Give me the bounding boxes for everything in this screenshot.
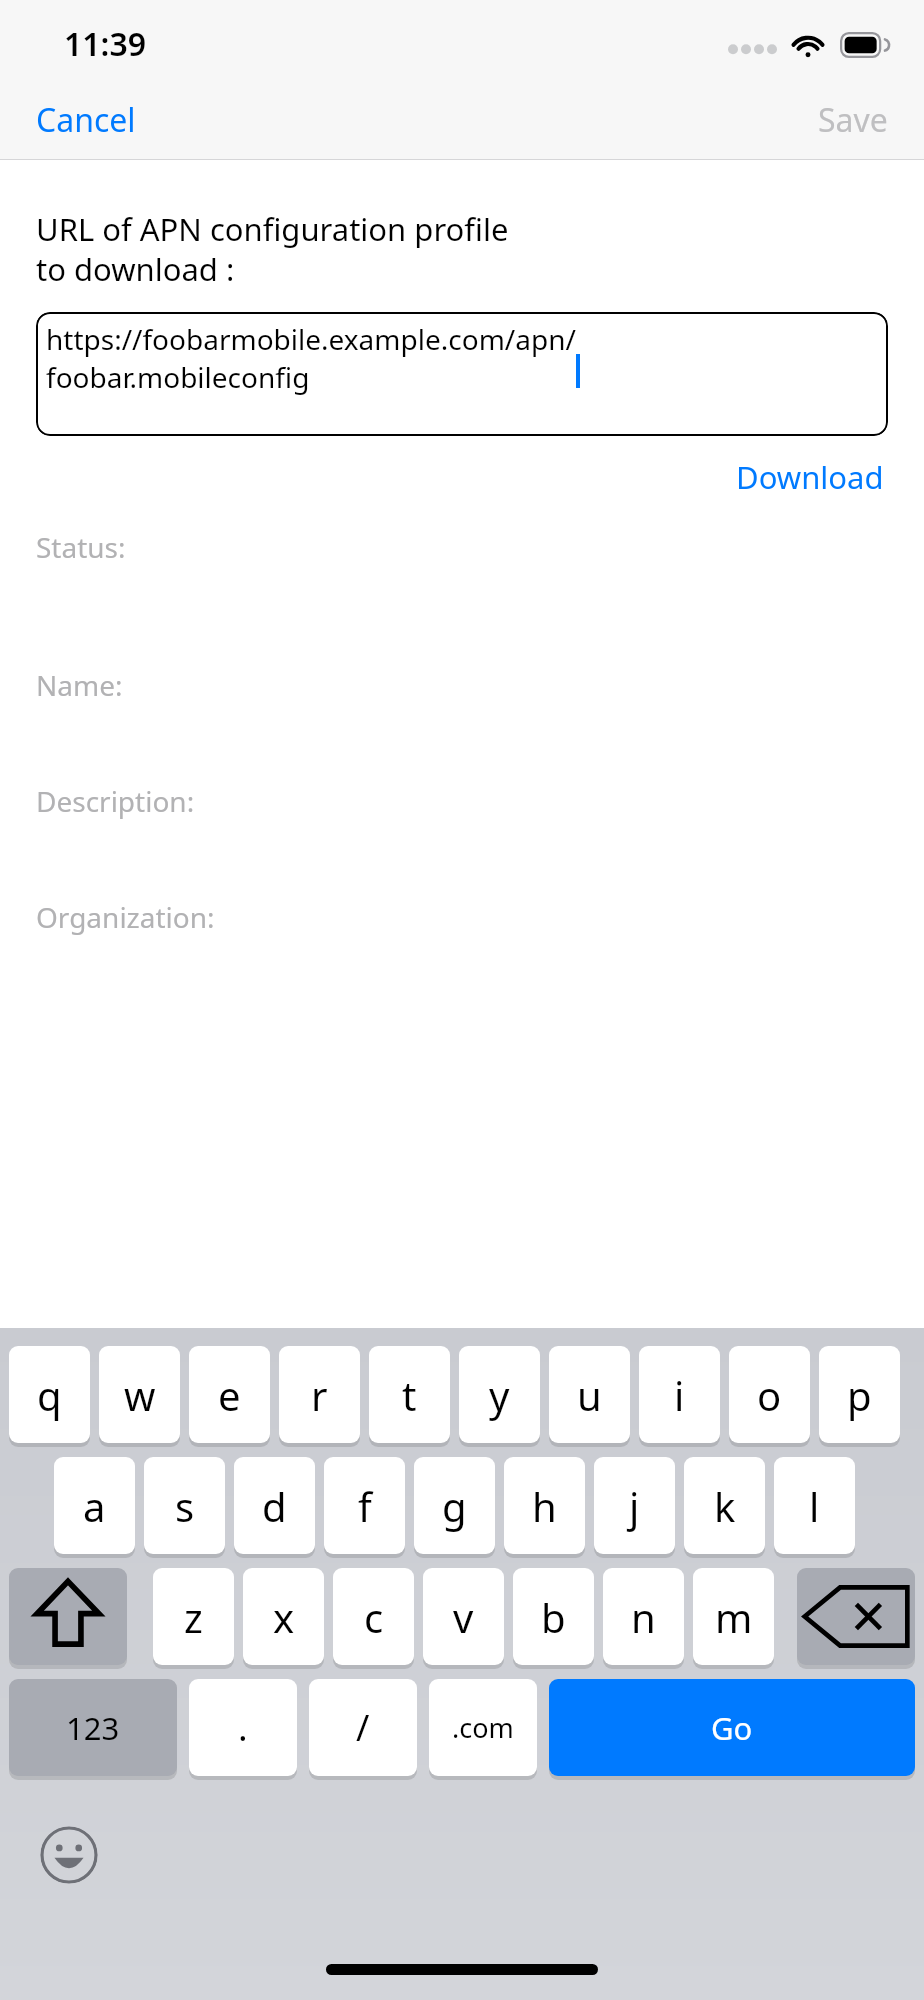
button[interactable]: m	[693, 1568, 774, 1665]
staticText: s	[175, 1479, 195, 1533]
staticText: v	[453, 1590, 474, 1644]
button[interactable]: b	[513, 1568, 594, 1665]
staticText: 123	[66, 1707, 120, 1749]
button[interactable]: g	[414, 1457, 495, 1554]
button[interactable]: v	[423, 1568, 504, 1665]
button[interactable]: Emoji keyboard	[40, 1826, 98, 1884]
button[interactable]: j	[594, 1457, 675, 1554]
button[interactable]: .	[189, 1679, 297, 1776]
button[interactable]: 123	[9, 1679, 177, 1776]
button[interactable]: w	[99, 1346, 180, 1443]
button[interactable]: o	[729, 1346, 810, 1443]
staticText: Organization:	[36, 898, 215, 936]
button[interactable]: Go	[549, 1679, 915, 1776]
staticText: .com	[452, 1709, 514, 1746]
button[interactable]: l	[774, 1457, 855, 1554]
button[interactable]: f	[324, 1457, 405, 1554]
button[interactable]: q	[9, 1346, 90, 1443]
button[interactable]: c	[333, 1568, 414, 1665]
button[interactable]: k	[684, 1457, 765, 1554]
button[interactable]: Download	[732, 448, 888, 506]
button[interactable]: z	[153, 1568, 234, 1665]
button[interactable]: Shift	[9, 1568, 127, 1665]
staticText: j	[629, 1479, 640, 1533]
staticText: Go	[711, 1707, 753, 1749]
staticText: h	[532, 1479, 557, 1533]
staticText: 11:39	[64, 22, 147, 66]
staticText: a	[83, 1479, 106, 1533]
staticText: k	[714, 1479, 736, 1533]
staticText: r	[311, 1368, 328, 1422]
staticText: f	[358, 1479, 372, 1533]
staticText: b	[541, 1590, 566, 1644]
staticText: e	[218, 1368, 241, 1422]
staticText: o	[757, 1368, 782, 1422]
staticText: y	[489, 1368, 510, 1422]
button[interactable]: u	[549, 1346, 630, 1443]
button[interactable]: t	[369, 1346, 450, 1443]
button[interactable]: x	[243, 1568, 324, 1665]
button[interactable]: i	[639, 1346, 720, 1443]
button[interactable]: r	[279, 1346, 360, 1443]
staticText: c	[364, 1590, 384, 1644]
staticText: n	[631, 1590, 656, 1644]
staticText: URL of APN configuration profile to down…	[36, 208, 509, 290]
staticText: x	[273, 1590, 295, 1644]
button[interactable]: p	[819, 1346, 900, 1443]
staticText: https://foobarmobile.example.com/apn/ fo…	[46, 320, 576, 396]
button[interactable]: d	[234, 1457, 315, 1554]
staticText: /	[356, 1703, 370, 1752]
button[interactable]: URL input field	[36, 312, 888, 436]
button[interactable]: n	[603, 1568, 684, 1665]
staticText: i	[674, 1368, 685, 1422]
staticText: Save	[818, 98, 888, 142]
staticText: Description:	[36, 782, 195, 820]
staticText: g	[442, 1479, 467, 1533]
staticText: Cancel	[36, 98, 136, 142]
button[interactable]: s	[144, 1457, 225, 1554]
button[interactable]: Save	[798, 86, 908, 154]
button[interactable]: .com	[429, 1679, 537, 1776]
staticText: u	[577, 1368, 602, 1422]
staticText: p	[847, 1368, 872, 1422]
button[interactable]: /	[309, 1679, 417, 1776]
staticText: Name:	[36, 666, 123, 704]
staticText: d	[262, 1479, 287, 1533]
button[interactable]: e	[189, 1346, 270, 1443]
staticText: Download	[736, 456, 884, 498]
staticText: w	[124, 1368, 156, 1422]
staticText: t	[402, 1368, 417, 1422]
staticText: q	[37, 1368, 62, 1422]
button[interactable]: Backspace	[797, 1568, 915, 1665]
staticText: l	[809, 1479, 820, 1533]
staticText: .	[238, 1703, 248, 1752]
button[interactable]: Cancel	[16, 86, 156, 154]
staticText: Status:	[36, 528, 126, 566]
button[interactable]: h	[504, 1457, 585, 1554]
button[interactable]: a	[54, 1457, 135, 1554]
staticText: m	[715, 1590, 753, 1644]
staticText: z	[184, 1590, 203, 1644]
button[interactable]: y	[459, 1346, 540, 1443]
